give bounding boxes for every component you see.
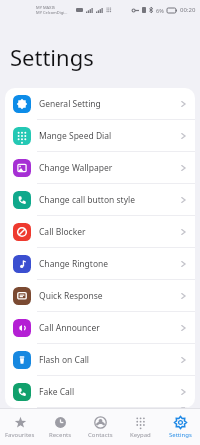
button[interactable]: Flash on Call	[5, 344, 195, 375]
button[interactable]: Fake Call	[5, 376, 195, 407]
staticText: 00:20	[180, 6, 196, 14]
button[interactable]: Call Blocker	[5, 216, 195, 247]
staticText: Change call button style	[39, 194, 181, 206]
button[interactable]: General Setting	[5, 88, 195, 119]
button[interactable]: Mange Speed Dial	[5, 120, 195, 151]
button[interactable]: Recents	[40, 409, 80, 445]
button[interactable]: Settings	[160, 409, 200, 445]
staticText: Mange Speed Dial	[39, 130, 181, 142]
staticText: General Setting	[39, 98, 181, 110]
staticText: MY MAXIS	[36, 5, 56, 10]
staticText: Call Announcer	[39, 322, 181, 334]
staticText: Change Ringtone	[39, 258, 181, 270]
staticText: Settings	[169, 431, 192, 439]
button[interactable]: Contacts	[80, 409, 120, 445]
staticText: Fake Call	[39, 386, 181, 398]
staticText: Contacts	[88, 431, 113, 439]
staticText: Quick Response	[39, 290, 181, 302]
staticText: Change Wallpaper	[39, 162, 181, 174]
staticText: Keypad	[130, 431, 151, 439]
staticText: Call Blocker	[39, 226, 181, 238]
button[interactable]: Favourites	[0, 409, 40, 445]
button[interactable]: Keypad	[120, 409, 160, 445]
staticText: MY CelcomDigi…	[36, 10, 68, 15]
staticText: 6%	[156, 7, 164, 14]
button[interactable]: Call Announcer	[5, 312, 195, 343]
staticText: Recents	[49, 431, 72, 439]
button[interactable]: Change Wallpaper	[5, 152, 195, 183]
staticText: Settings	[10, 42, 94, 72]
button[interactable]: Change call button style	[5, 184, 195, 215]
button[interactable]: Quick Response	[5, 280, 195, 311]
button[interactable]: Change Ringtone	[5, 248, 195, 279]
staticText: Favourites	[5, 431, 35, 439]
staticText: Flash on Call	[39, 354, 181, 366]
